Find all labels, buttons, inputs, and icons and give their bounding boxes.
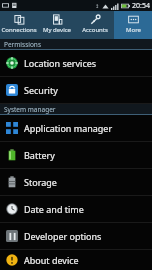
staticText: Connections [1,26,37,34]
staticText: Date and time [24,203,84,215]
staticText: Location services [24,57,97,69]
staticText: Permissions [4,40,42,49]
staticText: Battery [24,149,55,161]
button[interactable]: My device [38,11,76,39]
staticText: Storage [24,176,57,188]
staticText: 20:54 [132,1,150,11]
staticText: Application manager [24,122,113,134]
staticText: About device [24,254,79,266]
button[interactable]: Location services [0,50,152,77]
button[interactable]: Connections [0,11,38,39]
button[interactable]: Application manager [0,115,152,142]
button[interactable]: Storage [0,169,152,196]
button[interactable]: Accounts [76,11,114,39]
button[interactable]: Security [0,77,152,104]
staticText: My device [43,26,71,34]
staticText: Developer options [24,230,102,242]
staticText: Security [24,84,58,96]
staticText: Accounts [82,26,108,34]
button[interactable]: About device [0,250,152,270]
staticText: System manager [4,105,56,114]
staticText: More [126,26,141,34]
staticText: ↕ [95,3,100,9]
button[interactable]: Battery [0,142,152,169]
button[interactable]: More [114,11,152,39]
button[interactable]: Developer options [0,223,152,250]
button[interactable]: Date and time [0,196,152,223]
